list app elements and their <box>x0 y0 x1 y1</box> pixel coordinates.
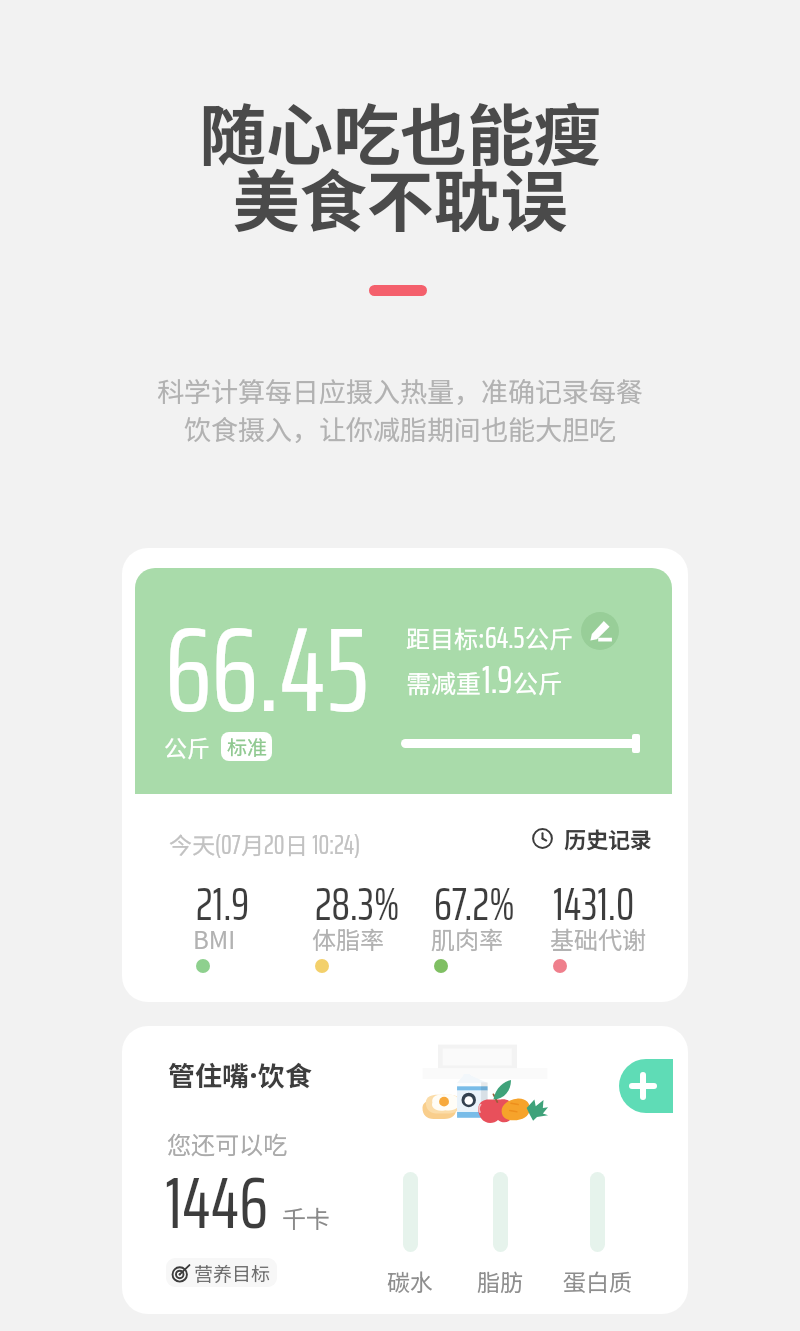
staticText: 肌肉率 <box>431 921 503 956</box>
staticText: 距目标: <box>406 620 485 655</box>
button[interactable]: Edit weight goal <box>581 612 619 650</box>
staticText: 公斤 <box>513 664 564 700</box>
staticText: 日 <box>285 827 308 860</box>
staticText: 21.9 <box>196 868 250 940</box>
staticText: 科学计算每日应摄入热量，准确记录每餐 饮食摄入，让你减脂期间也能大胆吃 <box>0 371 800 447</box>
button[interactable]: 营养目标 <box>166 1258 277 1287</box>
staticText: 67.2% <box>434 868 515 940</box>
staticText: (07 <box>215 823 241 865</box>
staticText: 您还可以吃 <box>167 1126 287 1161</box>
staticText: 今天 <box>169 827 215 860</box>
button[interactable]: Add food record <box>619 1059 673 1113</box>
staticText: 基础代谢 <box>550 921 646 956</box>
staticText: 碳水 <box>387 1264 433 1297</box>
staticText: 月 <box>241 827 264 860</box>
staticText: 营养目标 <box>194 1259 271 1287</box>
button[interactable]: 历史记录 <box>532 822 653 854</box>
staticText: 1431.0 <box>553 868 635 940</box>
staticText: 蛋白质 <box>563 1264 632 1297</box>
staticText: 公斤 <box>164 730 210 763</box>
staticText: 1446 <box>165 1144 268 1260</box>
staticText: 千卡 <box>282 1200 330 1235</box>
staticText: 随心吃也能瘦 美食不耽误 <box>0 82 800 245</box>
staticText: 饮食 <box>258 1055 312 1094</box>
staticText: 历史记录 <box>564 822 653 854</box>
staticText: 66.45 <box>165 575 369 764</box>
staticText: 标准 <box>227 732 267 761</box>
staticText: 28.3% <box>315 868 400 940</box>
staticText: 10:24) <box>308 823 361 865</box>
staticText: 公斤 <box>525 620 573 655</box>
staticText: 体脂率 <box>312 921 384 956</box>
staticText: 脂肪 <box>477 1264 523 1297</box>
staticText: 管住嘴 <box>168 1055 249 1094</box>
button[interactable]: 标准 <box>221 732 272 761</box>
staticText: 20 <box>264 823 285 865</box>
staticText: 64.5 <box>485 614 525 661</box>
staticText: 需减重 <box>406 664 482 700</box>
staticText: BMI <box>193 921 236 956</box>
staticText: 1.9 <box>482 650 513 710</box>
